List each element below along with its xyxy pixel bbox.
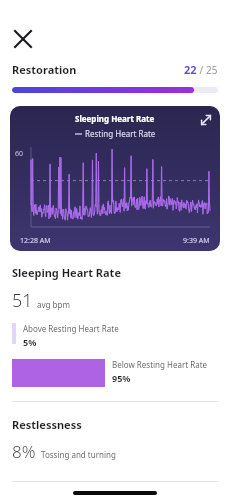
staticText: 8% [12,440,36,463]
staticText: 95% [112,372,131,384]
staticText: Sleeping Heart Rate [12,265,121,280]
staticText: 12:28 AM [20,236,51,246]
staticText: 51 [12,288,33,313]
staticText: avg bpm [37,299,70,310]
staticText: Restlessness [12,417,82,432]
button[interactable]: Expand chart [196,110,216,130]
staticText: 22 [184,62,197,77]
staticText: Tossing and turning [41,449,116,460]
staticText: 5% [23,336,37,348]
staticText: Resting Heart Rate [85,128,156,139]
staticText: 60 [15,149,24,159]
staticText: Restoration [12,62,77,77]
staticText: 9:39 AM [183,236,210,246]
staticText: / 25 [197,63,218,77]
button[interactable]: Close [8,24,38,54]
staticText: Above Resting Heart Rate [23,323,119,334]
staticText: Below Resting Heart Rate [112,359,208,370]
staticText: Sleeping Heart Rate [75,113,155,124]
button[interactable]: Sleeping Heart Rate [10,106,220,251]
